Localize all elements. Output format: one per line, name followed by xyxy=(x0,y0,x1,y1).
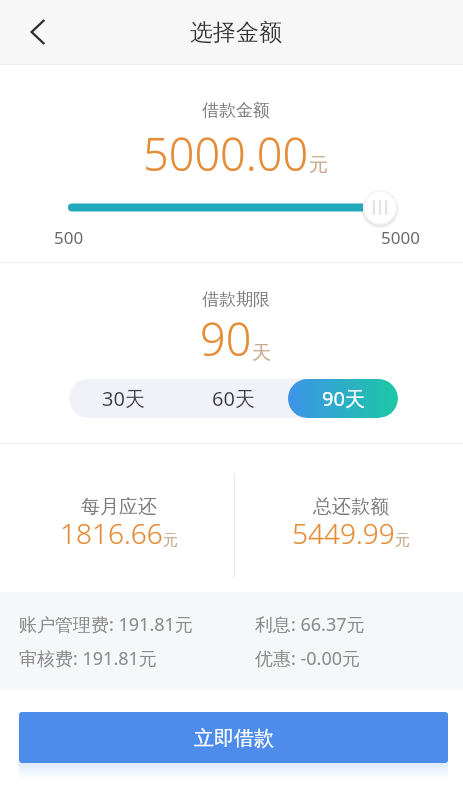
staticText: 90 xyxy=(200,308,252,369)
staticText: 天 xyxy=(252,341,271,365)
staticText: 利息: 66.37元 xyxy=(255,612,365,637)
staticText: 5449.99 xyxy=(292,514,395,552)
staticText: 借款金额 xyxy=(202,100,270,121)
staticText: 立即借款 xyxy=(194,726,274,751)
staticText: 30天 xyxy=(102,385,145,412)
staticText: 审核费: 191.81元 xyxy=(19,646,157,671)
staticText: 90天 xyxy=(322,385,365,412)
staticText: 500 xyxy=(54,226,84,249)
staticText: 选择金额 xyxy=(190,18,282,47)
button[interactable]: 60天 xyxy=(178,379,288,418)
staticText: 5000 xyxy=(381,226,420,249)
button[interactable]: 30天 xyxy=(69,379,178,418)
staticText: 元 xyxy=(309,153,328,177)
button[interactable]: 90天 xyxy=(288,379,398,418)
staticText: 账户管理费: 191.81元 xyxy=(19,612,193,637)
staticText: 元 xyxy=(395,531,410,550)
button[interactable]: Back xyxy=(20,14,56,50)
staticText: 总还款额 xyxy=(313,495,389,519)
staticText: 5000.00 xyxy=(143,123,309,184)
button[interactable]: 立即借款 xyxy=(19,712,448,763)
staticText: 元 xyxy=(163,531,178,550)
staticText: 借款期限 xyxy=(202,289,270,310)
staticText: 优惠: -0.00元 xyxy=(255,646,361,671)
staticText: 1816.66 xyxy=(60,514,163,552)
staticText: 60天 xyxy=(212,385,255,412)
staticText: 每月应还 xyxy=(81,495,157,519)
